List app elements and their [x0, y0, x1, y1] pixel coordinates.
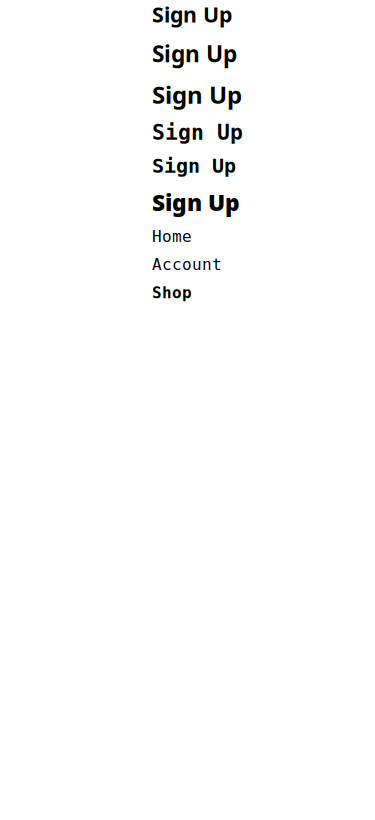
staticText: Sign Up: [152, 120, 243, 144]
staticText: Sign Up: [152, 38, 237, 68]
staticText: Home: [152, 227, 192, 245]
staticText: Sign Up: [152, 0, 232, 28]
staticText: Sign Up: [152, 78, 242, 110]
staticText: Sign Up: [152, 187, 240, 217]
staticText: Shop: [152, 284, 192, 302]
staticText: Account: [152, 255, 222, 274]
staticText: Sign Up: [152, 154, 236, 177]
